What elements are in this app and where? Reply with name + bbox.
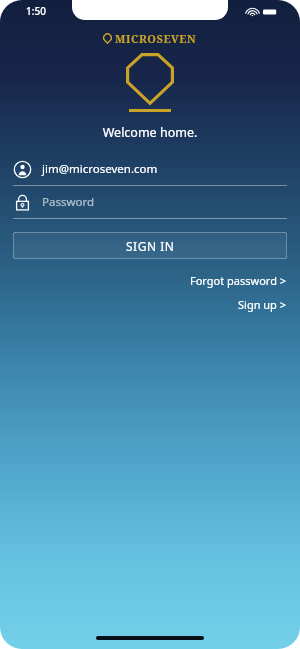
other: Password	[13, 193, 32, 212]
staticText: jim@microseven.com	[42, 161, 158, 177]
staticText: SIGN IN	[126, 238, 175, 254]
button[interactable]: Sign up >	[0, 297, 300, 312]
button[interactable]: Password	[13, 186, 287, 218]
staticText: MICROSEVEN	[115, 31, 197, 46]
staticText: Forgot password >	[190, 273, 287, 288]
staticText: Sign up >	[238, 297, 287, 312]
staticText: Welcome home.	[0, 124, 300, 141]
button[interactable]: Forgot password >	[0, 273, 300, 288]
staticText: 1:50	[26, 4, 46, 18]
button[interactable]: Account	[13, 153, 287, 185]
button[interactable]: SIGN IN	[13, 232, 287, 259]
other: Account	[13, 160, 32, 179]
staticText: Password	[42, 194, 95, 210]
